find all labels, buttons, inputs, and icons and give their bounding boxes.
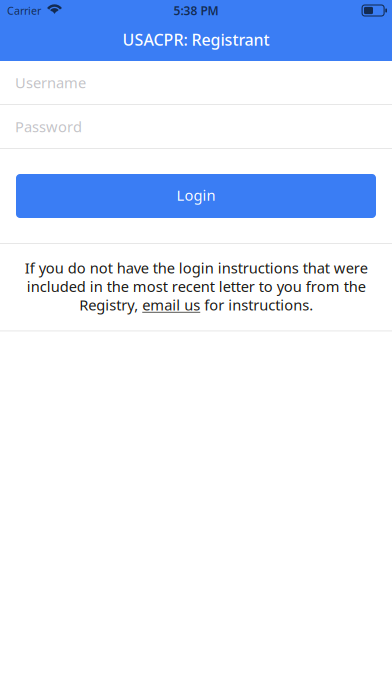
button[interactable]: Login: [16, 174, 376, 218]
staticText: Username: [15, 73, 86, 92]
button[interactable]: Password: [0, 105, 392, 148]
staticText: Login: [176, 185, 215, 205]
staticText: 5:38 PM: [173, 2, 218, 18]
staticText: Password: [15, 117, 82, 136]
staticText: USACPR: Registrant: [122, 29, 269, 50]
staticText: Carrier: [7, 3, 41, 18]
button[interactable]: Username: [0, 61, 392, 104]
staticText: If you do not have the login instruction…: [24, 258, 367, 314]
